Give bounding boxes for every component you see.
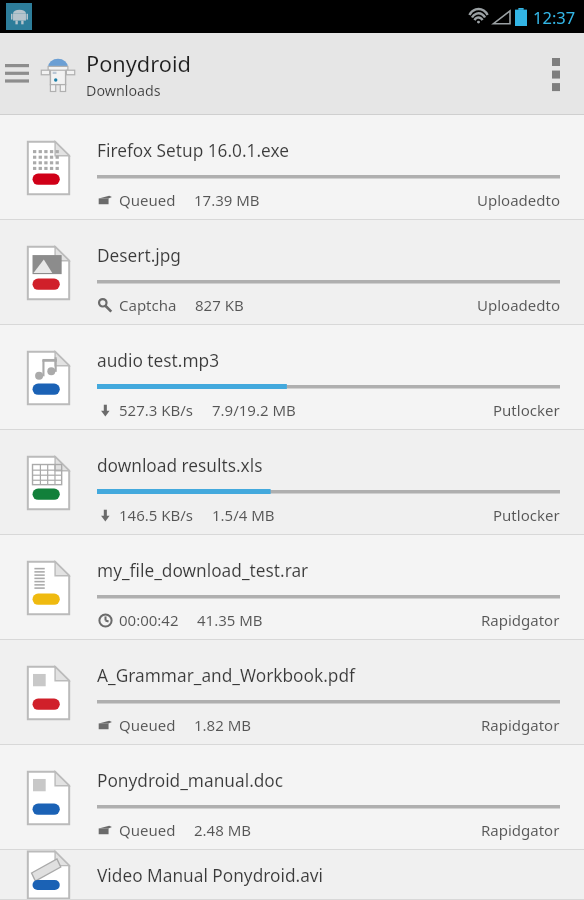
button[interactable]: Firefox Setup 16.0.1.exe xyxy=(0,115,584,220)
button[interactable]: Ponydroid_manual.doc xyxy=(0,745,584,850)
staticText: 00:00:42 xyxy=(119,610,179,630)
button[interactable]: my_file_download_test.rar xyxy=(0,535,584,640)
staticText: Ponydroid xyxy=(86,49,191,79)
staticText: Rapidgator xyxy=(481,715,560,735)
staticText: 527.3 KB/s xyxy=(119,400,194,420)
button[interactable]: Open navigation drawer xyxy=(0,33,34,115)
staticText: audio test.mp3 xyxy=(97,349,219,372)
staticText: Firefox Setup 16.0.1.exe xyxy=(97,139,289,162)
staticText: Video Manual Ponydroid.avi xyxy=(97,864,324,887)
staticText: 146.5 KB/s xyxy=(119,505,194,525)
button[interactable]: Ponydroid logo xyxy=(34,33,82,115)
staticText: 7.9/19.2 MB xyxy=(212,400,296,420)
staticText: 12:37 xyxy=(533,6,576,28)
staticText: download results.xls xyxy=(97,454,263,477)
button[interactable]: Desert.jpg xyxy=(0,220,584,325)
staticText: Queued xyxy=(119,820,176,840)
staticText: 1.5/4 MB xyxy=(212,505,275,525)
button[interactable]: download results.xls xyxy=(0,430,584,535)
staticText: Putlocker xyxy=(493,400,560,420)
staticText: Uploadedto xyxy=(477,295,560,315)
staticText: 2.48 MB xyxy=(194,820,252,840)
staticText: Uploadedto xyxy=(477,190,560,210)
staticText: 41.35 MB xyxy=(197,610,263,630)
staticText: 827 KB xyxy=(195,295,244,315)
staticText: 1.82 MB xyxy=(194,715,252,735)
staticText: 17.39 MB xyxy=(194,190,260,210)
button[interactable]: Video Manual Ponydroid.avi xyxy=(0,850,584,900)
button[interactable]: A_Grammar_and_Workbook.pdf xyxy=(0,640,584,745)
staticText: Captcha xyxy=(119,295,177,315)
staticText: Queued xyxy=(119,190,176,210)
staticText: Ponydroid_manual.doc xyxy=(97,769,284,792)
staticText: Rapidgator xyxy=(481,820,560,840)
button[interactable]: audio test.mp3 xyxy=(0,325,584,430)
staticText: my_file_download_test.rar xyxy=(97,559,309,582)
staticText: A_Grammar_and_Workbook.pdf xyxy=(97,664,355,687)
staticText: Desert.jpg xyxy=(97,244,181,267)
staticText: Downloads xyxy=(86,81,161,100)
button[interactable]: More options xyxy=(528,33,584,115)
staticText: Rapidgator xyxy=(481,610,560,630)
staticText: Queued xyxy=(119,715,176,735)
staticText: Putlocker xyxy=(493,505,560,525)
